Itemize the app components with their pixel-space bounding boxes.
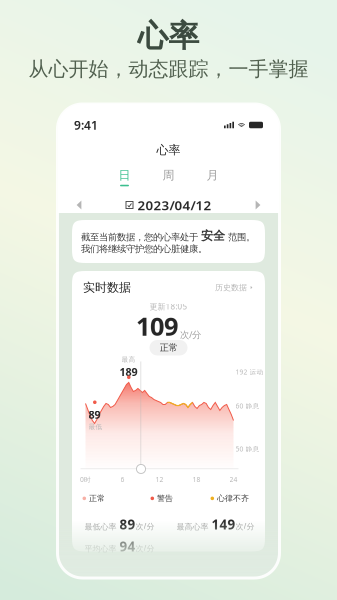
staticText: 正常 [89,493,105,503]
staticText: 189 [119,365,137,379]
staticText: 0时 [80,475,91,484]
button[interactable]: 周 [146,168,190,190]
staticText: 次/分 [235,521,254,532]
button[interactable]: 日 [102,168,146,190]
staticText: 正常 [159,342,177,353]
staticText: 周 [162,168,174,183]
staticText: 109 [136,309,178,343]
staticText: 警告 [157,493,173,503]
staticText: 最低心率 [84,522,116,532]
staticText: 心律不齐 [217,493,249,503]
staticText: 历史数据 [215,283,247,292]
staticText: 最高心率 [176,522,208,532]
button[interactable]: 月 [190,168,234,190]
staticText: 次/分 [135,521,154,532]
staticText: 12 [155,475,163,484]
staticText: 最低 [88,423,102,431]
staticText: 89 [119,515,135,533]
staticText: 实时数据 [83,280,131,295]
staticText: 149 [211,515,235,533]
staticText: 2023/04/12 [137,196,211,214]
button[interactable]: 历史数据 [215,283,254,292]
staticText: 9:41 [74,117,98,133]
button[interactable]: 2023/04/12 [125,196,211,214]
staticText: 心率 [156,143,180,157]
staticText: 192 运动 [235,367,263,376]
staticText: 从心开始，动态跟踪，一手掌握 [28,57,308,81]
staticText: 50 静息 [235,444,259,453]
button[interactable]: Next day [251,198,265,212]
staticText: 89 [88,407,100,422]
staticText: 最高 [121,355,135,364]
staticText: 月 [206,168,218,183]
staticText: 24 [229,475,237,484]
staticText: 18 [192,475,200,484]
staticText: 6 [120,475,124,484]
staticText: 94 [119,537,135,555]
staticText: 60 静息 [235,401,259,410]
staticText: 日 [118,168,130,183]
staticText: 心率 [137,17,199,55]
staticText: 平均心率 [84,544,116,554]
staticText: 次/分 [180,328,201,341]
staticText: 更新18:05 [149,301,187,312]
staticText: 次/分 [135,543,154,554]
staticText: 截至当前数据，您的心率处于 安全 范围。我们将继续守护您的心脏健康。 [81,228,255,255]
button[interactable]: Previous day [72,198,86,212]
